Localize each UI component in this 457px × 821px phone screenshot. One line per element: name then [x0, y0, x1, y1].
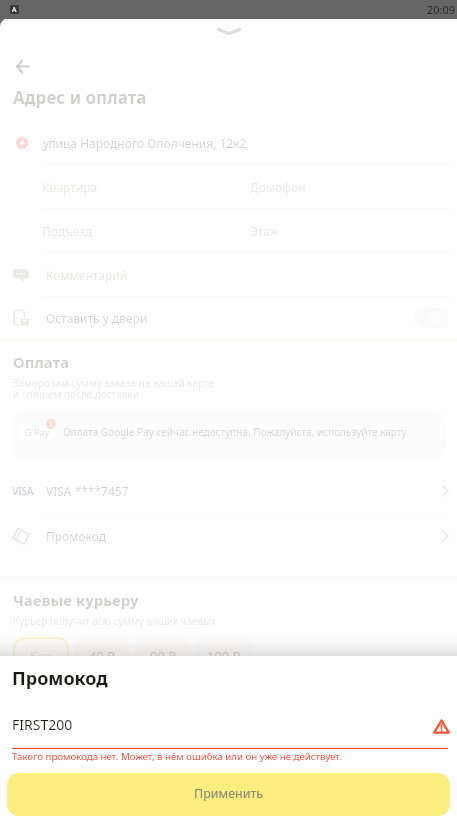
button[interactable]: VISA [12, 469, 453, 513]
staticText: Этаж [250, 223, 279, 239]
staticText: Квартира [42, 179, 98, 195]
staticText: Курьер получит всю сумму ваших чаевых [13, 614, 216, 628]
staticText: Заморозим сумму заказа на вашей карте и … [13, 376, 215, 401]
button[interactable]: Без [13, 637, 69, 675]
staticText: Подъезд [42, 223, 93, 239]
staticText: Промокод [46, 528, 106, 544]
staticText: Чаевые курьеру [13, 590, 139, 610]
button[interactable]: 99 ₽ [135, 637, 191, 675]
button[interactable]: Этаж [250, 223, 449, 239]
button[interactable]: 49 ₽ [74, 637, 130, 675]
staticText: Оплата Google Pay сейчас недоступна. Пож… [63, 425, 407, 439]
staticText: FIRST200 [12, 715, 73, 734]
staticText: Применить [194, 785, 264, 802]
staticText: ! [50, 419, 52, 429]
staticText: VISA [12, 484, 34, 498]
staticText: G Pay [25, 426, 49, 438]
staticText: Без [30, 647, 52, 665]
button[interactable]: Домофон [250, 179, 449, 195]
staticText: 49 ₽ [89, 647, 115, 665]
button[interactable]: Квартира [42, 179, 250, 195]
staticText: Домофон [250, 179, 306, 195]
staticText: Такого промокода нет. Может, в нём ошибк… [12, 750, 342, 763]
staticText: 199 ₽ [207, 647, 241, 665]
staticText: Оставить у двери [46, 310, 148, 326]
staticText: Промокод [12, 666, 108, 691]
staticText: улица Народного Ополчения, 12к2 [43, 135, 247, 151]
button[interactable]: Подъезд [42, 223, 250, 239]
staticText: 99 ₽ [150, 647, 176, 665]
staticText: Комментарий [46, 267, 128, 283]
button[interactable]: Применить [7, 773, 450, 816]
button[interactable]: 199 ₽ [196, 637, 252, 675]
button[interactable]: Промокод [12, 514, 453, 558]
staticText: VISA ****7457 [46, 483, 129, 499]
button[interactable]: Оставить у двери [12, 297, 448, 339]
button[interactable]: Back [9, 53, 35, 79]
staticText: Оплата [13, 352, 70, 372]
staticText: A [12, 5, 17, 14]
button[interactable]: улица Народного Ополчения, 12к2 [13, 122, 449, 164]
staticText: 20:09 [427, 2, 456, 17]
staticText: Адрес и оплата [13, 86, 147, 109]
